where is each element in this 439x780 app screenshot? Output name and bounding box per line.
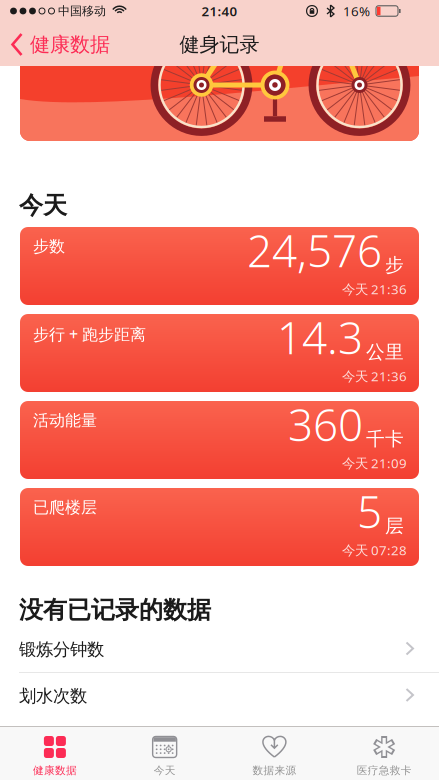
staticText: 健康数据	[33, 764, 77, 777]
staticText: 5	[357, 482, 382, 540]
staticText: 划水次数	[19, 685, 87, 707]
staticText: 24,576	[247, 221, 382, 279]
staticText: 没有已记录的数据	[19, 595, 211, 625]
button[interactable]: 步行 + 跑步距离	[20, 314, 419, 392]
staticText: 21:40	[201, 2, 237, 20]
staticText: 数据来源	[252, 764, 296, 777]
staticText: 今天 21:36	[342, 367, 407, 385]
staticText: 今天 07:28	[342, 541, 407, 559]
staticText: 千卡	[366, 428, 404, 451]
button[interactable]: 数据来源	[219, 726, 329, 780]
staticText: 锻炼分钟数	[19, 639, 104, 660]
button[interactable]: 今天	[110, 726, 220, 780]
staticText: 医疗急救卡	[357, 764, 412, 777]
button[interactable]: 活动能量	[20, 401, 419, 479]
staticText: 健身记录	[179, 32, 259, 57]
button[interactable]: 已爬楼层	[20, 488, 419, 566]
staticText: 今天 21:09	[342, 454, 407, 472]
staticText: 今天	[19, 191, 67, 220]
staticText: 今天 21:36	[342, 280, 407, 298]
button[interactable]: 步数	[20, 227, 419, 305]
button[interactable]: 健康数据	[0, 726, 110, 780]
button[interactable]: 医疗急救卡	[329, 726, 439, 780]
staticText: 中国移动	[58, 4, 106, 18]
staticText: 步	[385, 254, 404, 277]
staticText: 16%	[343, 2, 370, 20]
staticText: 360	[288, 395, 363, 453]
staticText: 今天	[154, 764, 176, 777]
staticText: 步数	[33, 236, 65, 256]
staticText: 已爬楼层	[33, 497, 97, 517]
staticText: 健康数据	[30, 32, 110, 57]
staticText: 层	[385, 515, 404, 538]
staticText: 公里	[366, 341, 404, 364]
button[interactable]: 锻炼分钟数	[0, 623, 439, 673]
button[interactable]: 健康数据	[11, 23, 110, 66]
button[interactable]: 划水次数	[0, 670, 439, 720]
staticText: 14.3	[277, 308, 363, 366]
staticText: 活动能量	[33, 410, 97, 430]
staticText: 步行 + 跑步距离	[33, 323, 146, 345]
